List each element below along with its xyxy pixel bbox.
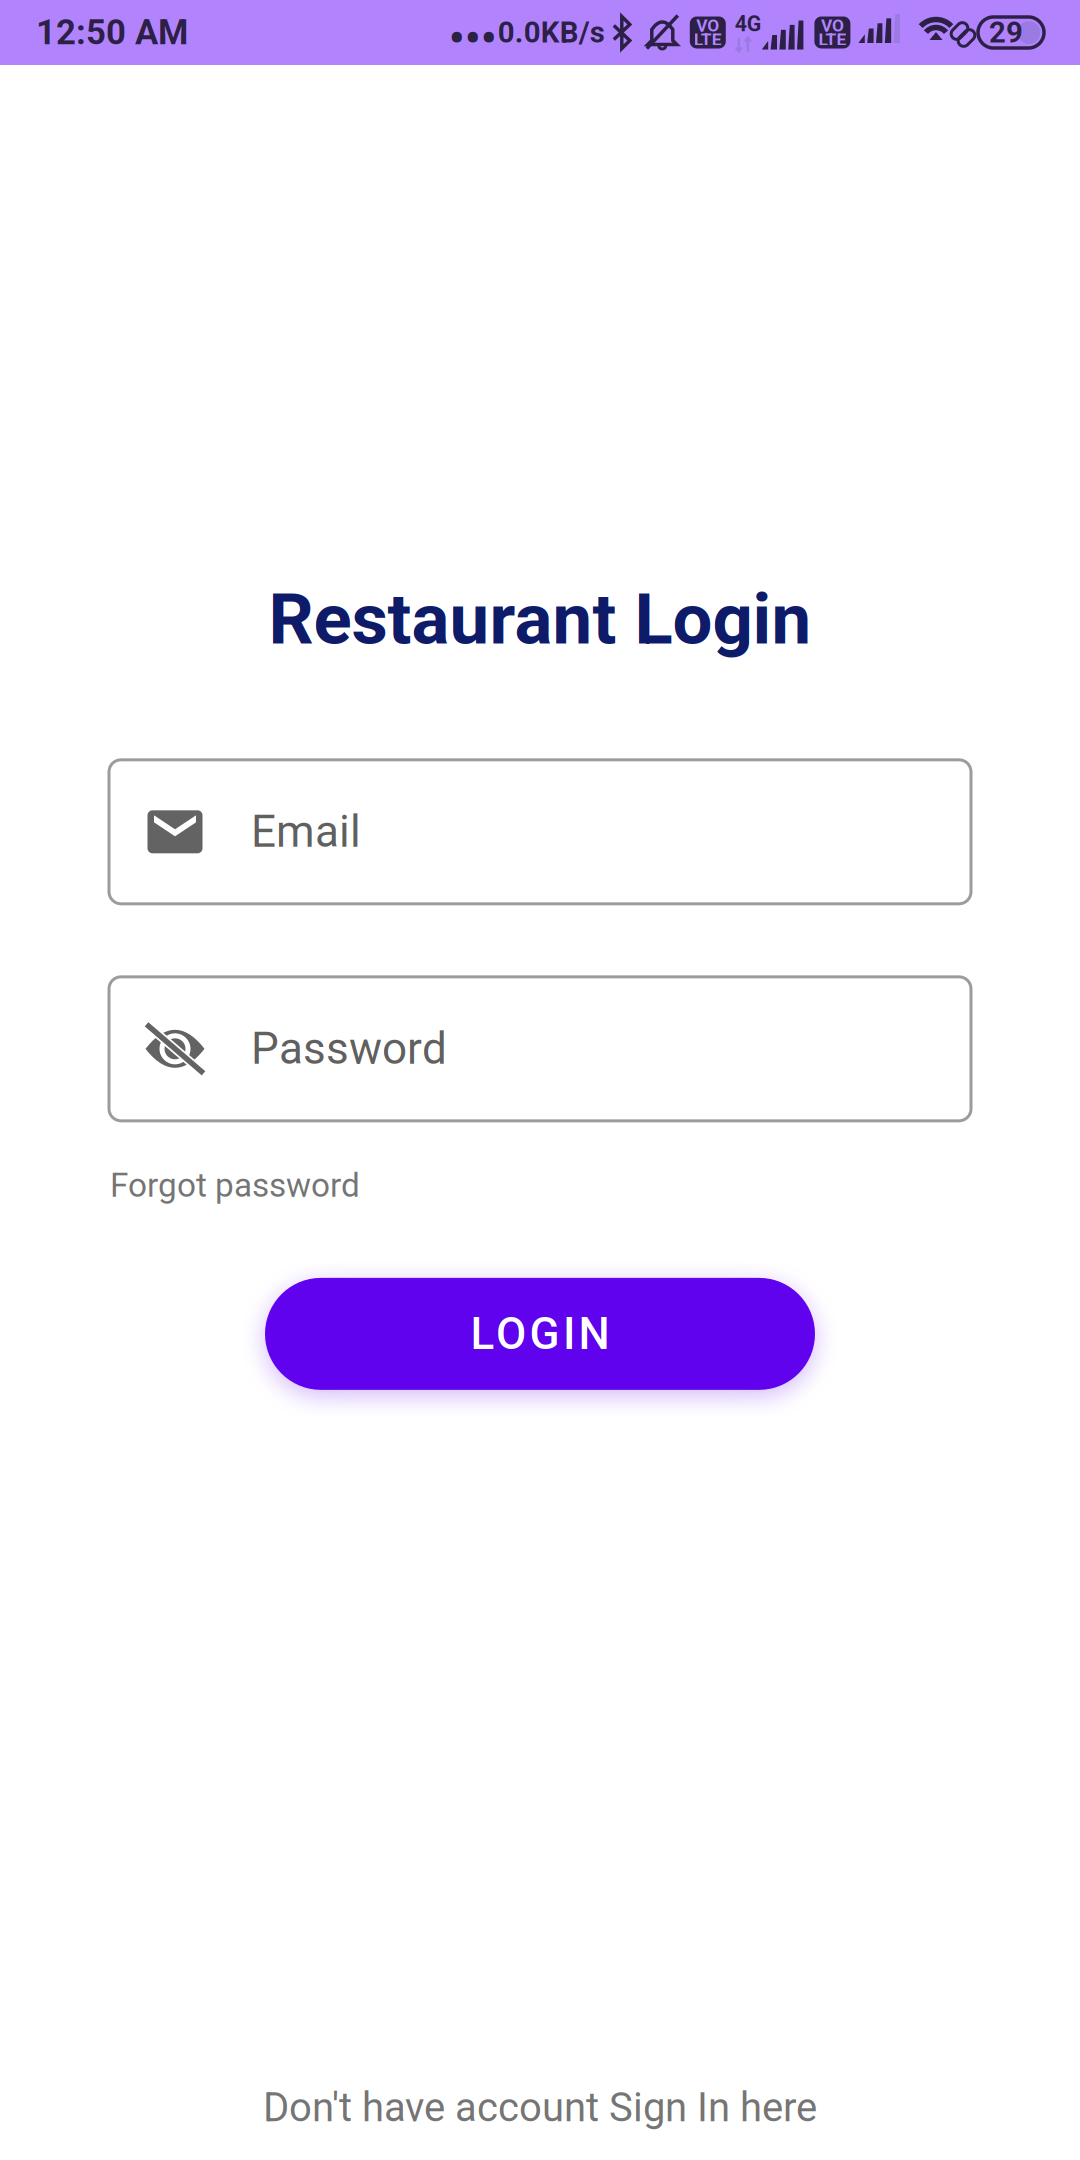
staticText: ••• — [449, 13, 497, 64]
staticText: Forgot password — [110, 1166, 360, 1205]
staticText: LTE — [694, 29, 722, 50]
staticText: 29 — [989, 15, 1023, 50]
staticText: 0.0KB/s — [498, 15, 605, 50]
staticText: Password — [251, 1023, 447, 1075]
staticText: LOGIN — [470, 1308, 609, 1360]
staticText: 12:50 AM — [36, 12, 188, 53]
button[interactable]: LOGIN — [265, 1278, 815, 1390]
staticText: 4G — [735, 11, 762, 36]
button[interactable]: Don't have account Sign In here — [263, 2084, 817, 2131]
button[interactable]: Forgot password — [110, 1166, 360, 1205]
staticText: VO — [696, 15, 719, 36]
staticText: VO — [821, 15, 844, 36]
staticText: Email — [251, 806, 361, 858]
staticText: Don't have account Sign In here — [263, 2084, 817, 2131]
staticText: LTE — [818, 29, 846, 50]
staticText: Restaurant Login — [268, 578, 811, 661]
